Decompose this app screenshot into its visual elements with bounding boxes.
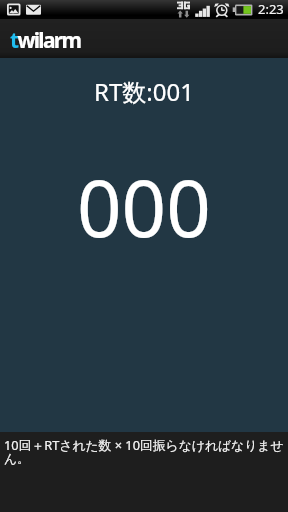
staticText: 2:23 [258,0,284,18]
staticText: 10回＋RTされた数 × 10回振らなければなりません。 [4,436,288,467]
staticText: RT数:001 [94,75,194,108]
staticText: 000 [77,154,211,260]
staticText: twilarm [10,26,81,55]
button[interactable]: twilarm [0,19,288,58]
